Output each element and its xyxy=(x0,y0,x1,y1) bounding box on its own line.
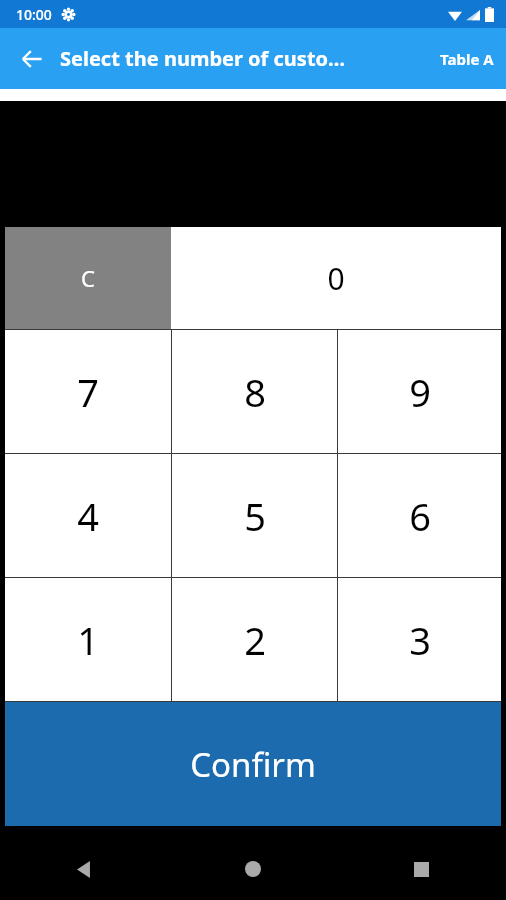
staticText: C xyxy=(81,263,95,293)
staticText: Confirm xyxy=(190,742,316,787)
staticText: 2 xyxy=(244,614,266,666)
staticText: 7 xyxy=(77,366,99,418)
button[interactable]: Table A xyxy=(428,28,506,89)
staticText: 8 xyxy=(244,366,266,418)
staticText: 6 xyxy=(409,490,431,542)
button[interactable]: 3 xyxy=(338,578,501,701)
button[interactable]: 5 xyxy=(172,454,337,577)
staticText: 4 xyxy=(77,490,99,542)
staticText: 10:00 xyxy=(16,5,52,24)
staticText: 0 xyxy=(327,258,345,299)
button[interactable]: Confirm xyxy=(5,702,501,826)
staticText: Table A xyxy=(440,49,494,69)
staticText: 5 xyxy=(244,490,266,542)
button[interactable]: Home xyxy=(168,838,337,900)
staticText: 1 xyxy=(77,614,99,666)
staticText: 3 xyxy=(409,614,431,666)
staticText: 9 xyxy=(409,366,431,418)
button[interactable]: 1 xyxy=(5,578,171,701)
button[interactable]: 8 xyxy=(172,330,337,453)
staticText: Select the number of custo… xyxy=(60,45,428,72)
button[interactable]: 2 xyxy=(172,578,337,701)
button[interactable]: Back xyxy=(8,35,56,83)
button[interactable]: 9 xyxy=(338,330,501,453)
button[interactable]: 6 xyxy=(338,454,501,577)
button[interactable]: Recent apps xyxy=(337,838,506,900)
button[interactable]: C xyxy=(5,227,171,329)
button[interactable]: 7 xyxy=(5,330,171,453)
button[interactable]: Back xyxy=(0,838,168,900)
button[interactable]: 4 xyxy=(5,454,171,577)
